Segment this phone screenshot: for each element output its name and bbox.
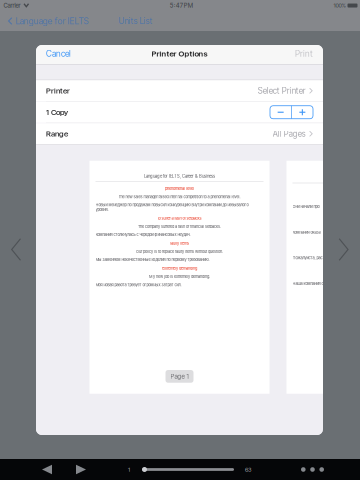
button[interactable]: Print xyxy=(285,43,323,64)
button[interactable]: Previous page xyxy=(40,459,54,480)
button[interactable]: Decrease copies xyxy=(270,106,291,119)
staticText: My new job is extremely demanding. xyxy=(149,274,210,279)
staticText: Они начали про xyxy=(292,204,319,209)
staticText: 1 Copy xyxy=(46,107,68,117)
staticText: faulty items xyxy=(170,241,189,246)
staticText: уровня. xyxy=(95,207,108,212)
staticText: to suffer a rash of setbacks xyxy=(157,216,201,221)
staticText: Select Printer xyxy=(258,86,306,96)
staticText: 5:47 PM xyxy=(170,2,193,9)
staticText: Компания оказа xyxy=(292,230,320,235)
button[interactable]: Printer xyxy=(36,80,323,101)
staticText: The company suffered a rash of financial… xyxy=(138,224,221,229)
staticText: 100% xyxy=(333,2,345,9)
staticText: phenomenal level xyxy=(165,186,194,191)
button[interactable]: Language for IELTS xyxy=(0,11,97,31)
button[interactable]: Cancel xyxy=(36,43,81,64)
button[interactable]: Range xyxy=(36,123,323,144)
staticText: Мы заменяем некачественные изделия по пе… xyxy=(95,257,209,262)
staticText: Новый менеджер по продажам повысил конку… xyxy=(95,203,248,207)
staticText: Language for IELTS, Career & Business xyxy=(144,174,215,179)
staticText: Units List xyxy=(119,16,153,26)
button[interactable]: Next page xyxy=(74,459,88,480)
staticText: Cancel xyxy=(46,49,71,59)
staticText: 63 xyxy=(245,466,251,473)
staticText: Language for IELTS xyxy=(16,16,89,26)
staticText: 1 xyxy=(128,466,130,473)
staticText: Carrier xyxy=(3,2,20,9)
staticText: All Pages xyxy=(273,129,306,139)
staticText: Print xyxy=(295,49,313,59)
staticText: Page 1 xyxy=(170,372,188,380)
staticText: extremely demanding xyxy=(162,266,197,271)
staticText: Our policy is to replace faulty items wi… xyxy=(136,249,223,254)
staticText: Range xyxy=(46,129,68,138)
staticText: Моя новая работа требует огромных затрат… xyxy=(95,282,181,287)
button[interactable]: More options xyxy=(291,459,334,480)
staticText: The new sales manager raised internal co… xyxy=(118,194,240,199)
staticText: Пожалуйста, рас xyxy=(292,256,322,260)
staticText: Printer xyxy=(46,86,70,95)
staticText: Printer Options xyxy=(151,49,207,58)
button[interactable]: Units List xyxy=(115,11,157,31)
button[interactable]: Increase copies xyxy=(292,106,313,119)
staticText: Наша компания с xyxy=(292,281,323,286)
staticText: Компания столкнулась с чередой финансовы… xyxy=(95,232,190,237)
button[interactable]: 1 Copy xyxy=(36,102,323,123)
